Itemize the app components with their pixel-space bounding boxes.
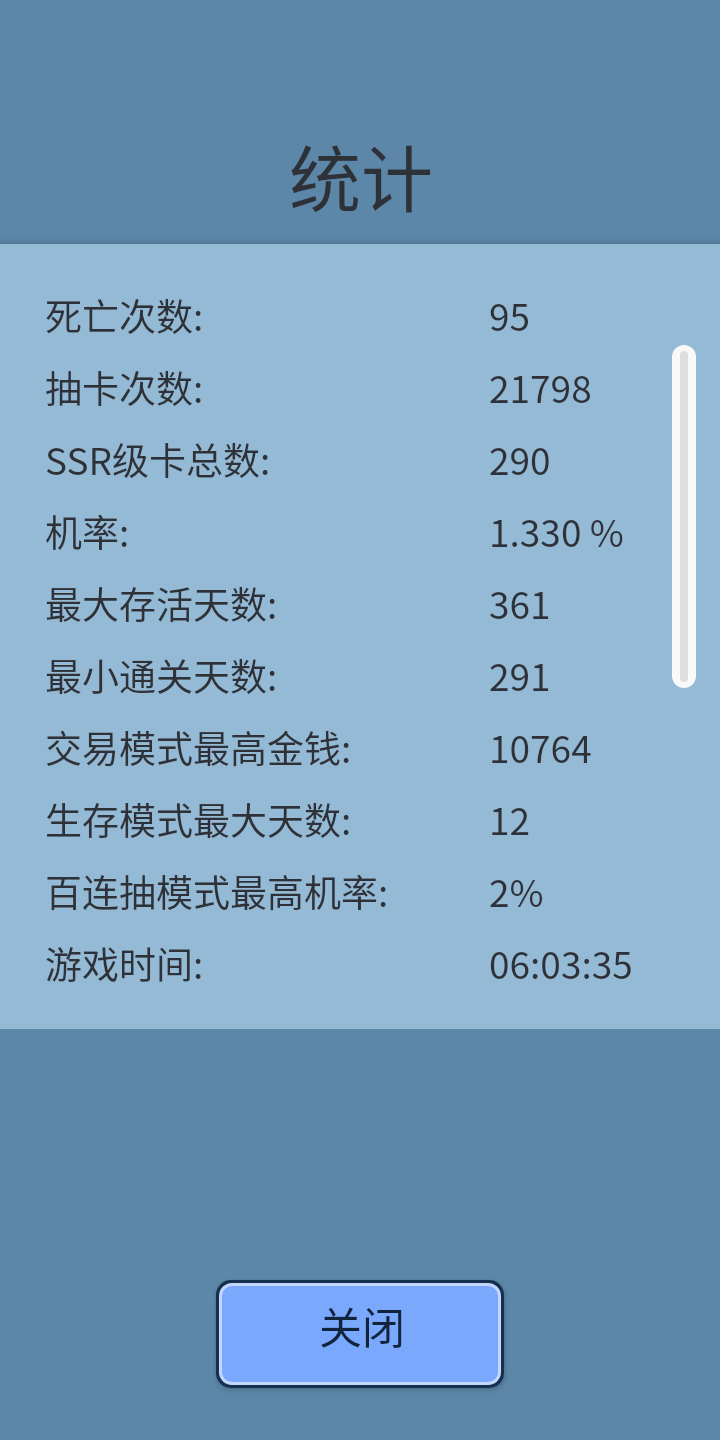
staticText: 291 (489, 648, 551, 702)
staticText: 2% (489, 864, 544, 918)
staticText: 生存模式最大天数: (45, 792, 352, 846)
staticText: 交易模式最高金钱: (45, 720, 352, 774)
button[interactable]: 关闭 (222, 1286, 498, 1382)
staticText: SSR级卡总数: (45, 432, 271, 486)
staticText: 统计 (289, 122, 434, 226)
staticText: 10764 (489, 720, 592, 774)
staticText: 最小通关天数: (45, 648, 278, 702)
staticText: 百连抽模式最高机率: (45, 864, 389, 918)
staticText: 关闭 (319, 1294, 405, 1356)
staticText: 最大存活天数: (45, 576, 278, 630)
staticText: 死亡次数: (45, 288, 204, 342)
staticText: 361 (489, 576, 551, 630)
staticText: 抽卡次数: (45, 360, 204, 414)
staticText: 06:03:35 (489, 936, 633, 990)
staticText: 1.330 % (489, 504, 624, 558)
staticText: 12 (489, 792, 531, 846)
staticText: 290 (489, 432, 551, 486)
staticText: 21798 (489, 360, 592, 414)
staticText: 游戏时间: (45, 936, 204, 990)
staticText: 95 (489, 288, 531, 342)
staticText: 机率: (45, 504, 130, 558)
